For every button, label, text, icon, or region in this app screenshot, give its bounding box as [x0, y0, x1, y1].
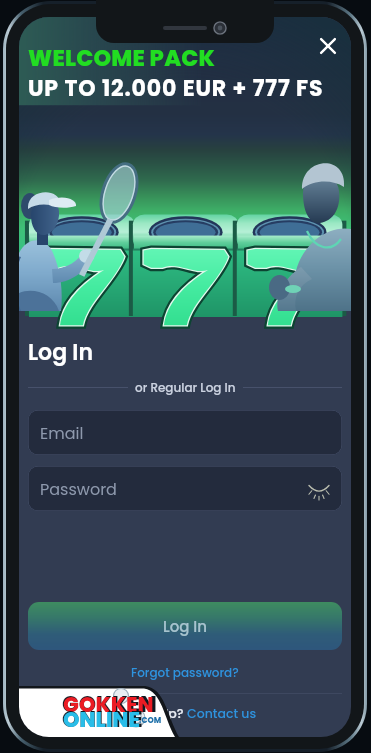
- staticText: Need help?: [113, 705, 187, 722]
- button[interactable]: Forgot password?: [131, 664, 239, 681]
- staticText: WELCOME PACK: [28, 42, 216, 73]
- staticText: GOKKEN: [62, 689, 157, 720]
- staticText: UP TO 12.000 EUR + 777 FS: [28, 73, 324, 104]
- staticText: GOKKEN: [63, 690, 154, 719]
- button[interactable]: Email: [28, 410, 342, 455]
- staticText: Email: [40, 422, 84, 444]
- staticText: .COM: [139, 715, 162, 726]
- button[interactable]: Close: [313, 31, 343, 61]
- button[interactable]: Password: [28, 466, 342, 511]
- button[interactable]: Contact us: [187, 705, 257, 722]
- staticText: Password: [40, 478, 117, 500]
- staticText: ONLINE: [62, 704, 143, 735]
- button[interactable]: Log In: [28, 602, 342, 650]
- staticText: ONLINE: [63, 705, 140, 734]
- staticText: or Regular Log In: [135, 379, 236, 396]
- staticText: Log In: [28, 337, 93, 368]
- staticText: Log In: [163, 616, 207, 637]
